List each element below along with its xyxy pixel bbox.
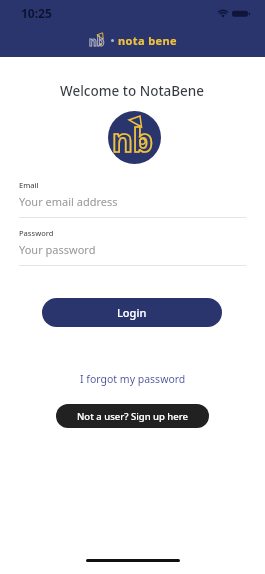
staticText: nb — [89, 33, 105, 49]
button[interactable]: Password — [19, 226, 246, 268]
staticText: Your email address — [19, 194, 118, 209]
button[interactable]: Login — [42, 298, 222, 327]
button[interactable]: Not a user? Sign up here — [56, 404, 209, 428]
staticText: nb — [112, 118, 154, 162]
button[interactable]: Email — [19, 178, 246, 220]
staticText: nota bene — [118, 33, 178, 48]
staticText: Login — [117, 305, 147, 320]
staticText: Your password — [19, 242, 96, 257]
staticText: 10:25 — [21, 5, 52, 21]
staticText: Email — [19, 180, 39, 190]
staticText: I forgot my password — [80, 372, 186, 386]
staticText: Welcome to NotaBene — [60, 82, 205, 100]
button[interactable]: I forgot my password — [80, 372, 186, 386]
staticText: Not a user? Sign up here — [77, 410, 189, 423]
staticText: Password — [19, 228, 54, 238]
